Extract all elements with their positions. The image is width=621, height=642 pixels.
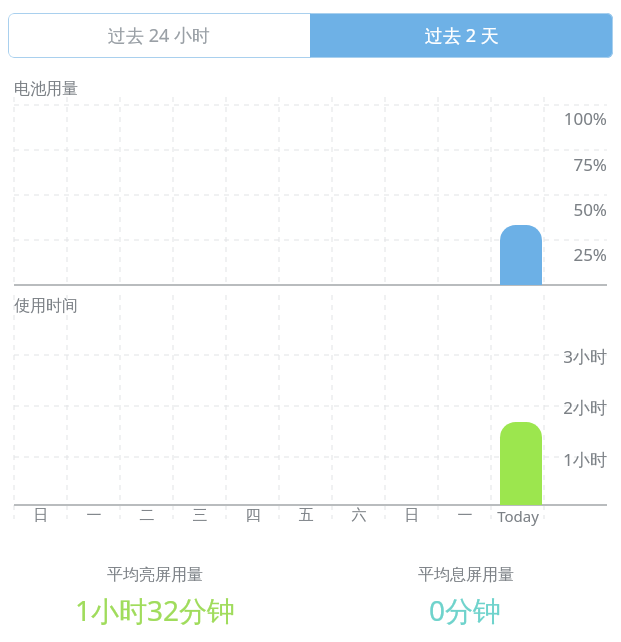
staticText: 一 bbox=[64, 506, 124, 525]
staticText: 25% bbox=[497, 243, 607, 266]
staticText: 一 bbox=[435, 506, 495, 525]
staticText: 四 bbox=[223, 506, 283, 525]
staticText: 使用时间 bbox=[14, 296, 78, 316]
staticText: 电池用量 bbox=[14, 79, 78, 99]
staticText: 平均息屏用量 bbox=[418, 565, 514, 585]
staticText: 100% bbox=[497, 107, 607, 130]
staticText: 2小时 bbox=[497, 396, 607, 419]
staticText: 平均亮屏用量 bbox=[107, 565, 203, 585]
staticText: 3小时 bbox=[497, 345, 607, 368]
staticText: 过去 24 小时 bbox=[108, 23, 210, 48]
staticText: 0分钟 bbox=[429, 591, 502, 629]
button[interactable]: 过去 24 小时 bbox=[8, 13, 310, 58]
staticText: 1小时32分钟 bbox=[75, 591, 236, 629]
staticText: 三 bbox=[170, 506, 230, 525]
staticText: 1小时 bbox=[497, 448, 607, 471]
staticText: 六 bbox=[329, 506, 389, 525]
staticText: 五 bbox=[276, 506, 336, 525]
staticText: 过去 2 天 bbox=[425, 23, 499, 48]
button[interactable]: 平均息屏用量 bbox=[310, 563, 621, 629]
staticText: 50% bbox=[497, 198, 607, 221]
staticText: 日 bbox=[11, 506, 71, 525]
staticText: 日 bbox=[382, 506, 442, 525]
staticText: 75% bbox=[497, 153, 607, 176]
button[interactable]: 过去 2 天 bbox=[310, 13, 613, 58]
staticText: Today bbox=[488, 506, 548, 526]
button[interactable]: 平均亮屏用量 bbox=[0, 563, 310, 629]
staticText: 二 bbox=[117, 506, 177, 525]
